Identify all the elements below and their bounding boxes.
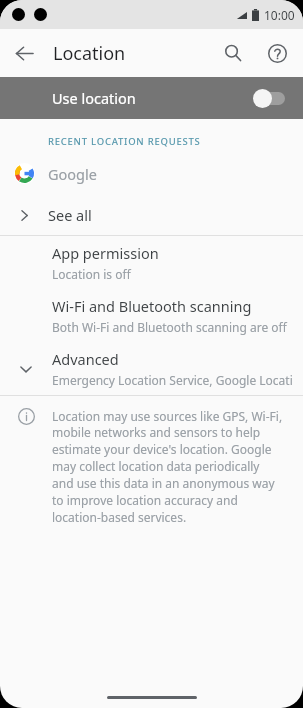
button[interactable]: Google <box>0 152 303 195</box>
staticText: Both Wi-Fi and Bluetooth scanning are of… <box>52 319 287 335</box>
button[interactable]: Advanced <box>0 342 303 395</box>
button[interactable]: Help <box>255 31 299 75</box>
staticText: RECENT LOCATION REQUESTS <box>48 135 201 148</box>
staticText: 10:00 <box>264 7 295 23</box>
staticText: App permission <box>52 243 159 263</box>
staticText: Google <box>48 164 97 184</box>
staticText: Location <box>53 41 211 66</box>
staticText: Wi-Fi and Bluetooth scanning <box>52 296 252 316</box>
button[interactable]: App permission <box>0 236 303 289</box>
button[interactable]: Wi-Fi and Bluetooth scanning <box>0 289 303 342</box>
staticText: Emergency Location Service, Google Locat… <box>52 372 293 388</box>
button[interactable]: See all <box>0 195 303 235</box>
staticText: Advanced <box>52 349 119 369</box>
button[interactable]: Use location <box>0 77 303 119</box>
staticText: Location is off <box>52 266 131 282</box>
button[interactable]: Search <box>211 31 255 75</box>
staticText: Location may use sources like GPS, Wi-Fi… <box>52 408 283 526</box>
staticText: Use location <box>52 88 253 108</box>
button[interactable]: Back <box>0 29 48 77</box>
staticText: See all <box>48 205 92 225</box>
